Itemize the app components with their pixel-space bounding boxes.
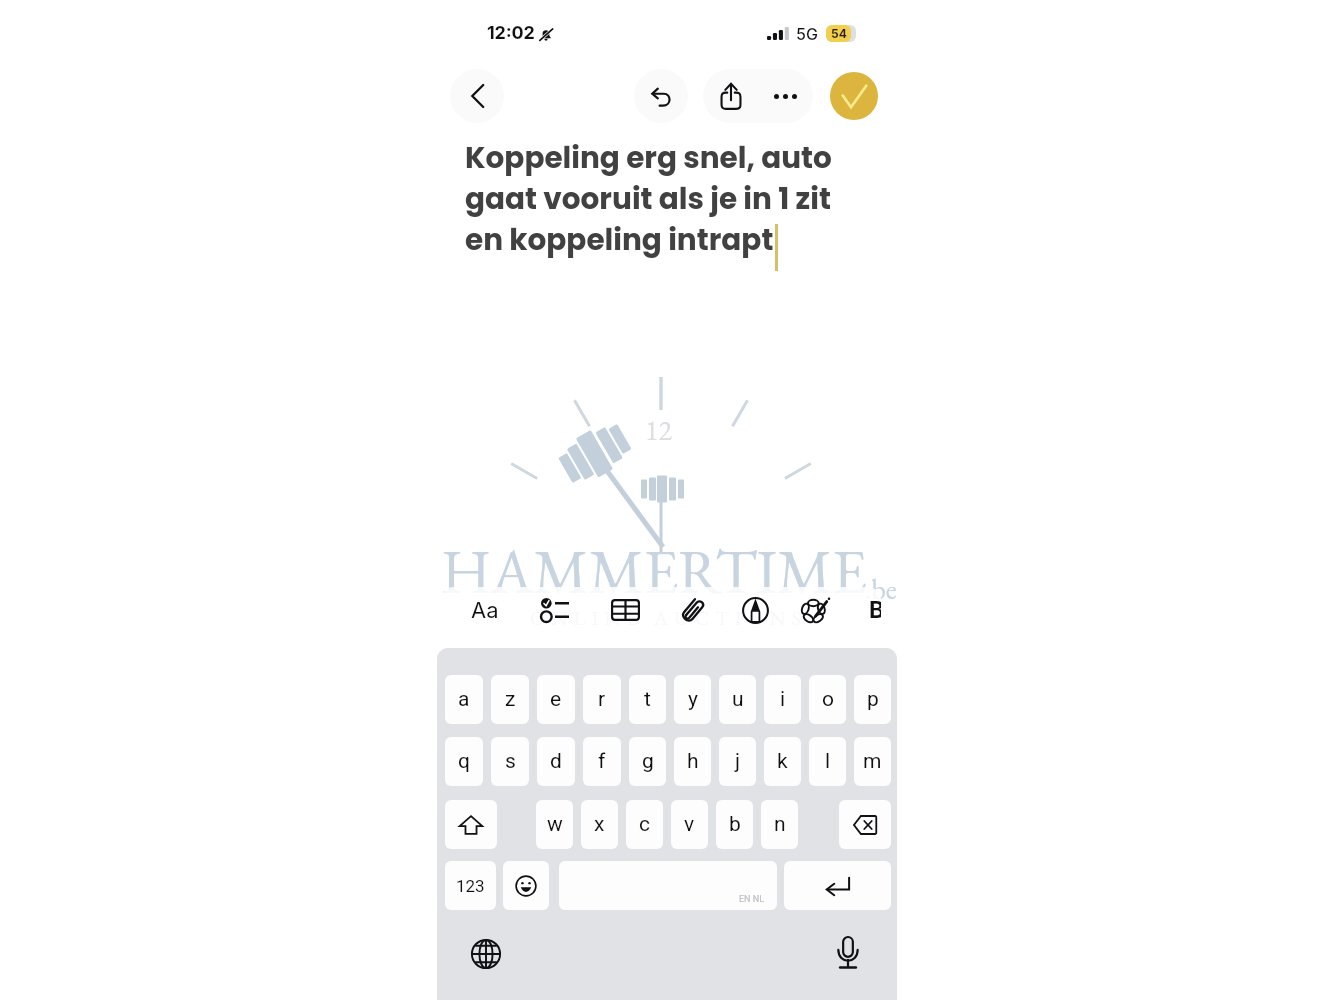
button[interactable]: j [719, 737, 756, 786]
staticText: k [777, 749, 788, 774]
button[interactable]: v [671, 800, 708, 849]
staticText: Koppeling erg snel, auto gaat vooruit al… [465, 137, 841, 260]
button[interactable]: f [583, 737, 621, 786]
button[interactable]: Back [450, 69, 504, 123]
button[interactable]: Shift [445, 800, 497, 849]
button[interactable]: b [716, 800, 753, 849]
button[interactable]: Dictate [830, 934, 866, 970]
button[interactable]: Return [784, 861, 891, 910]
staticText: HAMMERTIME [441, 531, 867, 612]
button[interactable]: e [537, 675, 575, 724]
button[interactable]: Backspace [839, 800, 891, 849]
button[interactable]: Done [830, 72, 878, 120]
staticText: y [688, 687, 698, 712]
button[interactable]: Table [602, 587, 648, 633]
staticText: Aa [471, 597, 499, 624]
staticText: q [458, 749, 470, 774]
staticText: v [684, 812, 695, 837]
staticText: EN NL [739, 894, 765, 905]
staticText: m [863, 749, 882, 774]
staticText: z [505, 687, 516, 712]
staticText: ONLINE AUCTIONS [530, 605, 808, 631]
staticText: h [687, 749, 699, 774]
staticText: .be [865, 571, 897, 608]
staticText: r [598, 687, 606, 712]
button[interactable]: p [854, 675, 891, 724]
button[interactable]: Text format [462, 587, 508, 633]
staticText: b [729, 812, 741, 837]
staticText: a [458, 687, 470, 712]
button[interactable]: t [629, 675, 666, 724]
staticText: w [547, 812, 563, 837]
staticText: p [867, 687, 879, 712]
staticText: g [642, 749, 654, 774]
button[interactable]: g [629, 737, 666, 786]
staticText: B [869, 596, 881, 624]
button[interactable]: w [536, 800, 573, 849]
button[interactable]: Markup [732, 587, 778, 633]
button[interactable]: d [537, 737, 575, 786]
button[interactable]: h [674, 737, 711, 786]
staticText: f [598, 749, 606, 774]
button[interactable]: Checklist [532, 587, 578, 633]
staticText: 54 [831, 26, 847, 41]
button[interactable]: Bold [850, 587, 881, 633]
staticText: u [732, 687, 744, 712]
button[interactable]: Attachment [669, 587, 715, 633]
button[interactable]: m [854, 737, 891, 786]
button[interactable]: Emoji [503, 861, 549, 910]
button[interactable]: y [674, 675, 711, 724]
button[interactable]: More options [758, 69, 813, 123]
button[interactable]: Change keyboard [468, 936, 504, 972]
staticText: 123 [456, 876, 485, 896]
button[interactable]: n [761, 800, 798, 849]
button[interactable]: u [719, 675, 756, 724]
button[interactable]: o [809, 675, 846, 724]
button[interactable]: l [809, 737, 846, 786]
button[interactable]: x [581, 800, 618, 849]
button[interactable]: a [445, 675, 483, 724]
staticText: s [505, 749, 516, 774]
button[interactable]: c [626, 800, 663, 849]
button[interactable]: z [491, 675, 529, 724]
button[interactable]: r [583, 675, 621, 724]
button[interactable]: Undo [634, 69, 688, 123]
staticText: 12 [645, 412, 672, 449]
staticText: n [774, 812, 786, 837]
staticText: 12:02 [487, 22, 535, 44]
button[interactable]: k [764, 737, 801, 786]
staticText: c [639, 812, 650, 837]
staticText: t [644, 687, 651, 712]
staticText: o [822, 687, 834, 712]
button[interactable]: s [491, 737, 529, 786]
staticText: d [550, 749, 562, 774]
button[interactable]: Scribble [792, 587, 838, 633]
staticText: j [735, 749, 741, 774]
button[interactable]: Share [703, 69, 758, 123]
button[interactable]: i [764, 675, 801, 724]
staticText: l [825, 749, 831, 774]
staticText: 5G [796, 24, 818, 43]
button[interactable]: q [445, 737, 483, 786]
staticText: x [594, 812, 605, 837]
button[interactable]: Numbers [445, 861, 496, 910]
staticText: i [780, 687, 786, 712]
button[interactable]: Space [559, 861, 777, 910]
staticText: e [550, 687, 562, 712]
